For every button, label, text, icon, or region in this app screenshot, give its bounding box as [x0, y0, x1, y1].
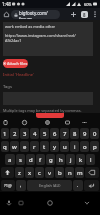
button[interactable]: 8: [70, 128, 79, 139]
button[interactable]: 1: [1, 128, 9, 139]
button[interactable]: z: [15, 167, 24, 178]
button[interactable]: .: [73, 180, 83, 191]
button[interactable]: f: [36, 154, 45, 165]
staticText: u: [63, 143, 67, 151]
button[interactable]: s: [16, 154, 25, 165]
staticText: h: [59, 156, 63, 164]
staticText: g: [49, 156, 53, 164]
staticText: p: [93, 143, 97, 151]
staticText: e: [23, 143, 27, 151]
button[interactable]: k: [76, 154, 85, 165]
staticText: Initial 'Headline': [3, 72, 34, 77]
button[interactable]: e: [20, 141, 29, 152]
button[interactable]: 6: [50, 128, 59, 139]
button[interactable]: j: [66, 154, 75, 165]
button[interactable]: v: [45, 167, 54, 178]
staticText: w: [12, 143, 17, 151]
button[interactable]: work embed as media other: [3, 22, 93, 56]
button[interactable]: o: [80, 141, 89, 152]
button[interactable]: Clipboard suggestion: [36, 113, 64, 118]
button[interactable]: Backspace: [85, 167, 99, 178]
button[interactable]: More options: [90, 10, 99, 19]
staticText: z: [18, 169, 21, 177]
button[interactable]: English (AU): [27, 180, 72, 191]
button[interactable]: Clipboard: [0, 117, 10, 127]
staticText: 0: [93, 130, 97, 138]
staticText: 3: [23, 130, 27, 138]
button[interactable]: h: [56, 154, 65, 165]
button[interactable]: p: [90, 141, 99, 152]
staticText: 60%: [84, 2, 92, 7]
button[interactable]: Settings: [42, 117, 52, 127]
button[interactable]: d: [26, 154, 35, 165]
button[interactable]: 0: [90, 128, 99, 139]
button[interactable]: q: [1, 141, 9, 152]
button[interactable]: 2: [10, 128, 19, 139]
button[interactable]: 4: [30, 128, 39, 139]
staticText: o: [83, 143, 87, 151]
staticText: j: [70, 156, 72, 164]
staticText: ,: [20, 182, 22, 189]
button[interactable]: New tab: [68, 9, 79, 20]
button[interactable]: Enter: [84, 180, 99, 191]
staticText: b: [58, 169, 62, 177]
staticText: v: [48, 169, 52, 177]
staticText: x: [28, 169, 32, 177]
button[interactable]: w: [10, 141, 19, 152]
staticText: f: [39, 156, 42, 164]
button[interactable]: r: [30, 141, 39, 152]
button[interactable]: 5: [40, 128, 49, 139]
button[interactable]: Voice input: [3, 197, 15, 209]
button[interactable]: Emoji: [19, 117, 29, 127]
staticText: 9: [83, 130, 87, 138]
staticText: m: [77, 169, 83, 177]
staticText: t: [43, 143, 46, 151]
staticText: 7: [63, 130, 67, 138]
button[interactable]: t: [40, 141, 49, 152]
button[interactable]: Home: [1, 9, 11, 19]
button[interactable]: ,: [16, 180, 26, 191]
button[interactable]: m: [75, 167, 84, 178]
button[interactable]: i: [70, 141, 79, 152]
button[interactable]: 9: [80, 128, 89, 139]
button[interactable]: y: [50, 141, 59, 152]
button[interactable]: u: [60, 141, 69, 152]
staticText: Tags: [3, 84, 12, 90]
button[interactable]: Recents: [15, 197, 27, 209]
button[interactable]: Shift: [1, 167, 14, 178]
button[interactable]: Hide keyboard: [81, 197, 93, 209]
button[interactable]: 3: [20, 128, 29, 139]
button[interactable]: b: [55, 167, 64, 178]
button[interactable]: a: [5, 154, 15, 165]
staticText: ?1@: [4, 183, 12, 188]
button[interactable]: 7: [60, 128, 69, 139]
staticText: 1:48: [2, 1, 11, 7]
button[interactable]: l: [86, 154, 95, 165]
button[interactable]: x: [25, 167, 34, 178]
button[interactable]: Attach files: [3, 59, 28, 68]
staticText: Multiple tags may be separated by commas…: [3, 108, 82, 113]
button[interactable]: bigfooty.com/forum: [11, 10, 60, 19]
staticText: 5: [43, 130, 47, 138]
staticText: 8: [83, 12, 86, 18]
button[interactable]: ?1@: [1, 180, 15, 191]
staticText: Attach files: [7, 61, 28, 66]
staticText: d: [29, 156, 33, 164]
button[interactable]: c: [35, 167, 44, 178]
staticText: l: [90, 156, 92, 164]
button[interactable]: Home: [44, 197, 56, 209]
staticText: s: [19, 156, 22, 164]
button[interactable]: n: [65, 167, 74, 178]
staticText: bigfooty.com/forum: [19, 10, 60, 19]
staticText: .: [77, 182, 79, 189]
button[interactable]: Tabs: [79, 9, 90, 20]
button[interactable]: Translate: [62, 117, 72, 127]
staticText: English (AU): [39, 183, 61, 188]
staticText: i: [74, 143, 76, 151]
staticText: a: [8, 156, 12, 164]
staticText: c: [38, 169, 41, 177]
staticText: q: [3, 143, 7, 151]
button[interactable]: More options: [79, 117, 89, 127]
button[interactable]: g: [46, 154, 55, 165]
